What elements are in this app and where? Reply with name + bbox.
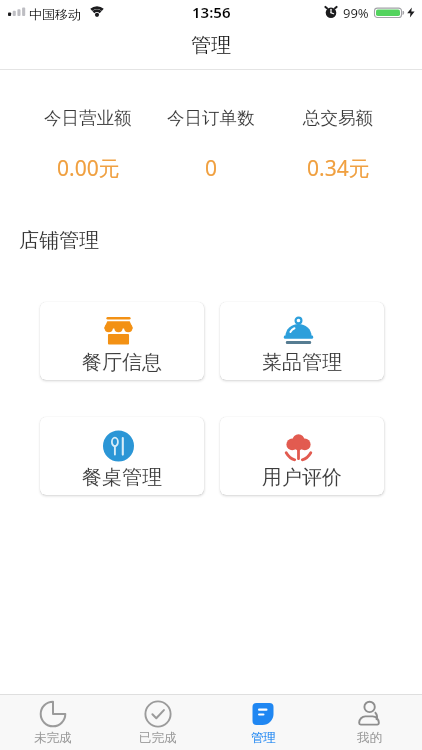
staticText: 用户评价 <box>262 465 342 490</box>
staticText: 未完成 <box>34 730 72 746</box>
button[interactable]: 用户评价 <box>220 417 384 495</box>
staticText: 中国移动 <box>29 6 81 22</box>
staticText: 店铺管理 <box>19 228 99 253</box>
button[interactable]: 餐桌管理 <box>40 417 204 495</box>
staticText: 管理 <box>251 730 276 746</box>
staticText: 菜品管理 <box>262 350 342 375</box>
button[interactable]: 未完成 <box>0 695 105 750</box>
staticText: 餐桌管理 <box>82 465 162 490</box>
button[interactable]: 已完成 <box>105 695 210 750</box>
staticText: 餐厅信息 <box>82 350 162 375</box>
button[interactable]: 管理 <box>210 695 316 750</box>
staticText: 管理 <box>191 33 231 58</box>
staticText: 0.34元 <box>307 154 370 183</box>
staticText: 总交易额 <box>303 107 373 129</box>
staticText: 已完成 <box>139 730 177 746</box>
button[interactable]: 餐厅信息 <box>40 302 204 380</box>
staticText: 99% <box>343 4 369 22</box>
staticText: 今日营业额 <box>44 107 132 129</box>
staticText: 0.00元 <box>57 154 120 183</box>
staticText: 13:56 <box>192 2 231 22</box>
staticText: 我的 <box>357 730 382 746</box>
button[interactable]: 菜品管理 <box>220 302 384 380</box>
staticText: 今日订单数 <box>167 107 255 129</box>
staticText: 0 <box>205 154 218 183</box>
button[interactable]: 我的 <box>316 695 422 750</box>
